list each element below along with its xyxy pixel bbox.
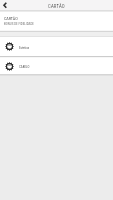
staticText: CABELO [19,65,30,69]
staticText: Estetica [19,46,30,50]
staticText: BONUS DE FIDELIDADE [4,22,35,26]
button[interactable]: Estetica [0,37,113,56]
button[interactable]: Back [0,0,11,10]
staticText: CARTÃO [4,16,18,21]
button[interactable]: CABELO [0,58,113,74]
staticText: CARTÃO [48,4,65,10]
